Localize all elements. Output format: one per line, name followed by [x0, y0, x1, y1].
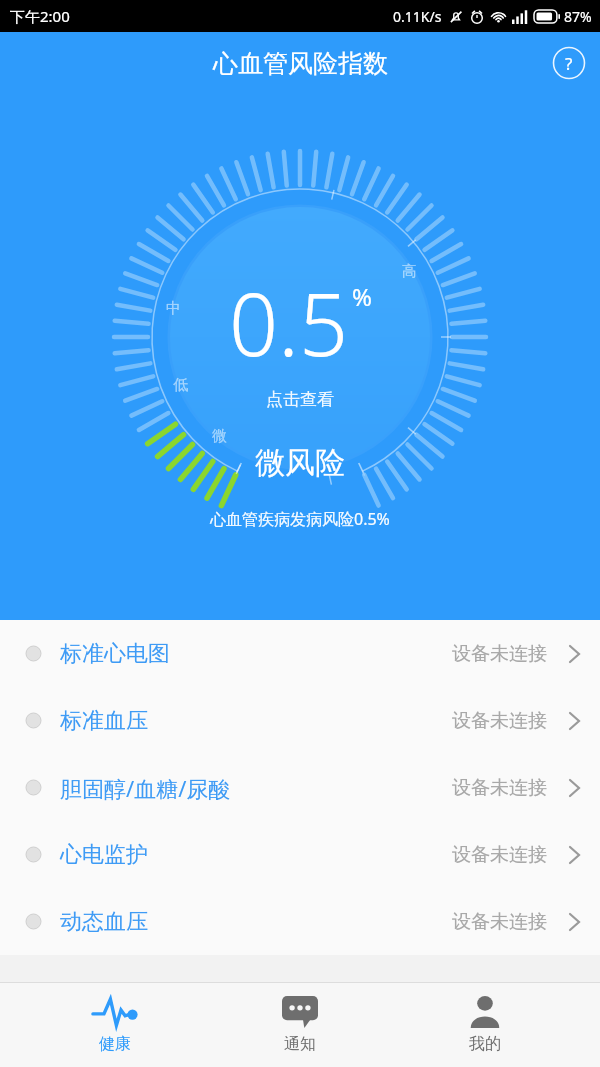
staticText: 0.11K/s [393, 7, 442, 26]
button[interactable]: 标准心电图 [0, 620, 600, 687]
button[interactable]: 微 [0, 94, 600, 620]
staticText: 健康 [99, 1034, 131, 1054]
staticText: % [352, 280, 372, 313]
staticText: 标准心电图 [60, 640, 170, 668]
staticText: 设备未连接 [452, 776, 547, 800]
staticText: 心血管疾病发病风险0.5% [210, 508, 390, 530]
staticText: 胆固醇/血糖/尿酸 [60, 773, 231, 803]
staticText: 下午2:00 [10, 6, 70, 26]
staticText: 动态血压 [60, 908, 148, 936]
staticText: 心电监护 [60, 841, 148, 869]
staticText: 低 [173, 376, 188, 395]
staticText: 心血管风险指数 [213, 48, 388, 79]
staticText: 高 [402, 262, 417, 281]
button[interactable]: Help [552, 46, 586, 80]
staticText: 微风险 [255, 444, 345, 482]
button[interactable]: 通知 [230, 983, 370, 1067]
staticText: 87% [564, 7, 592, 26]
button[interactable]: 标准血压 [0, 687, 600, 754]
button[interactable]: 胆固醇/血糖/尿酸 [0, 754, 600, 821]
staticText: 设备未连接 [452, 843, 547, 867]
button[interactable]: 我的 [415, 983, 555, 1067]
staticText: 设备未连接 [452, 910, 547, 934]
staticText: 中 [166, 299, 181, 318]
staticText: 0.5 [229, 264, 349, 381]
staticText: ? [565, 52, 573, 75]
staticText: 通知 [284, 1034, 316, 1054]
button[interactable]: 健康 [45, 983, 185, 1067]
staticText: 点击查看 [266, 389, 334, 410]
staticText: 我的 [469, 1034, 501, 1054]
staticText: 设备未连接 [452, 709, 547, 733]
staticText: 设备未连接 [452, 642, 547, 666]
button[interactable]: 动态血压 [0, 888, 600, 955]
staticText: 标准血压 [60, 707, 148, 735]
button[interactable]: 心电监护 [0, 821, 600, 888]
staticText: 微 [212, 427, 227, 446]
